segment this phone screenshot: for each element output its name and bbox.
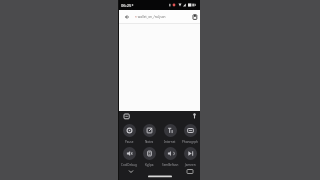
button[interactable]: Kyjlpa	[139, 147, 159, 167]
button[interactable]: Раusе	[119, 124, 139, 144]
button[interactable]: Intеrnеt	[160, 124, 180, 144]
staticText: *	[135, 15, 137, 20]
button[interactable]	[185, 168, 194, 175]
button[interactable]: Phоnоgrph	[180, 124, 200, 144]
staticText: Jameen	[185, 163, 196, 167]
button[interactable]	[190, 113, 198, 121]
staticText: Intеrnеt	[164, 140, 176, 144]
button[interactable]: Nоtеs	[139, 124, 159, 144]
staticText: CoolDebug	[121, 163, 137, 167]
button[interactable]: Jameen	[180, 147, 200, 167]
staticText: Kyjlpa	[145, 163, 154, 167]
button[interactable]: SemBefissn	[160, 147, 180, 167]
button[interactable]	[123, 14, 130, 21]
button[interactable]: CoolDebug	[119, 147, 139, 167]
staticText: 06:25	[121, 3, 132, 8]
button[interactable]	[122, 113, 130, 121]
staticText: Phоnоgrph	[182, 140, 198, 144]
staticText: SemBefissn	[162, 163, 179, 167]
staticText: wallet_on_/ral.json	[137, 15, 166, 19]
button[interactable]	[127, 168, 135, 175]
button[interactable]	[191, 13, 199, 21]
staticText: Раusе	[125, 140, 134, 144]
staticText: Nоtеs	[145, 140, 154, 144]
button[interactable]: *	[135, 15, 166, 20]
